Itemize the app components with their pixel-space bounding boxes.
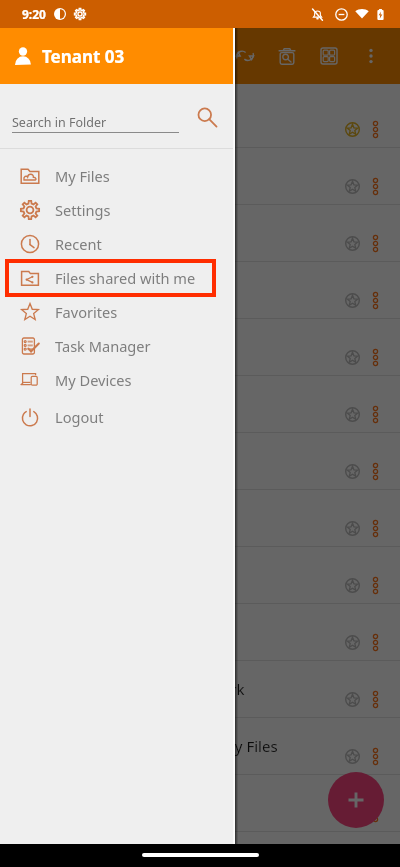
staticText: Pictures (52, 166, 337, 186)
button[interactable]: Row menu (367, 228, 383, 258)
button[interactable]: Project Alpha (0, 319, 400, 375)
button[interactable]: Reports (0, 433, 400, 489)
button[interactable]: More options (350, 28, 392, 84)
button[interactable]: Favorite (337, 627, 367, 657)
staticText: Files shared with me (55, 268, 196, 288)
button[interactable]: Quarterly Report Summary Files (0, 718, 400, 774)
staticText: Task Manager (55, 336, 151, 356)
button[interactable]: Row menu (367, 684, 383, 714)
button[interactable]: Row menu (367, 342, 383, 372)
button[interactable]: Row menu (367, 456, 383, 486)
button[interactable]: Favorite (337, 456, 367, 486)
button[interactable]: Logout (20, 400, 222, 434)
button[interactable]: Row menu (367, 285, 383, 315)
staticText: Tenant 03 (42, 45, 125, 68)
staticText: 9:20 (22, 6, 46, 22)
button[interactable]: Presentation Deck Network (0, 661, 400, 717)
button[interactable]: Favorite (337, 684, 367, 714)
staticText: Reports (52, 451, 337, 471)
staticText: Recent (55, 234, 102, 254)
staticText: Downloads (52, 280, 337, 300)
staticText: Shared Drive (52, 565, 337, 585)
staticText: Quarterly Report Summary Files (52, 736, 337, 756)
button[interactable]: Grid view (308, 28, 350, 84)
staticText: Search in Folder (12, 114, 107, 131)
button[interactable]: Favorite (337, 114, 367, 144)
staticText: Settings (55, 200, 111, 220)
button[interactable]: Favorite (337, 171, 367, 201)
button[interactable]: Downloads (0, 262, 400, 318)
button[interactable]: Files shared with me (20, 261, 222, 295)
staticText: Photos (52, 622, 337, 642)
button[interactable]: Add (328, 772, 384, 828)
button[interactable]: Pictures (0, 148, 400, 204)
button[interactable]: Documents (0, 91, 400, 147)
button[interactable]: Favorite (337, 228, 367, 258)
button[interactable]: Row menu (367, 627, 383, 657)
button[interactable]: Favorite (337, 513, 367, 543)
button[interactable]: Archive 2024 (0, 376, 400, 432)
button[interactable]: Favorites (20, 295, 222, 329)
staticText: Music (52, 223, 337, 243)
button[interactable]: Favorite (337, 798, 367, 828)
button[interactable]: Favorite (337, 570, 367, 600)
button[interactable]: Row menu (367, 171, 383, 201)
staticText: My Devices (55, 370, 132, 390)
button[interactable]: Photos (0, 604, 400, 660)
button[interactable]: Task Manager (20, 329, 222, 363)
button[interactable]: Notes (0, 775, 400, 831)
button[interactable]: Row menu (367, 114, 383, 144)
staticText: Logout (55, 407, 104, 427)
button[interactable]: Settings (20, 193, 222, 227)
button[interactable]: Sync (224, 28, 266, 84)
button[interactable]: Row menu (367, 570, 383, 600)
staticText: My Files (55, 166, 110, 186)
button[interactable]: My Devices (20, 363, 222, 397)
button[interactable]: Delete search (266, 28, 308, 84)
staticText: Notes (52, 793, 337, 813)
button[interactable]: Favorite (337, 285, 367, 315)
button[interactable]: My Files (20, 159, 222, 193)
staticText: Archive 2024 (52, 394, 337, 414)
staticText: 9:20 (22, 6, 46, 22)
staticText: Documents (52, 109, 337, 129)
button[interactable]: Favorite (337, 741, 367, 771)
staticText: Backup (52, 508, 337, 528)
button[interactable]: Row menu (367, 513, 383, 543)
button[interactable]: Favorite (337, 342, 367, 372)
button[interactable]: Row menu (367, 741, 383, 771)
button[interactable]: Row menu (367, 798, 383, 828)
button[interactable]: Music (0, 205, 400, 261)
staticText: Favorites (55, 302, 118, 322)
button[interactable]: Row menu (367, 399, 383, 429)
button[interactable]: Backup (0, 490, 400, 546)
staticText: Tenant 03 (42, 45, 125, 68)
button[interactable]: Tenant 03 (14, 28, 234, 84)
button[interactable]: Search (191, 101, 223, 133)
staticText: Presentation Deck Network (52, 679, 337, 699)
button[interactable]: Shared Drive (0, 547, 400, 603)
staticText: Project Alpha (52, 337, 337, 357)
button[interactable]: Recent (20, 227, 222, 261)
button[interactable]: Favorite (337, 399, 367, 429)
